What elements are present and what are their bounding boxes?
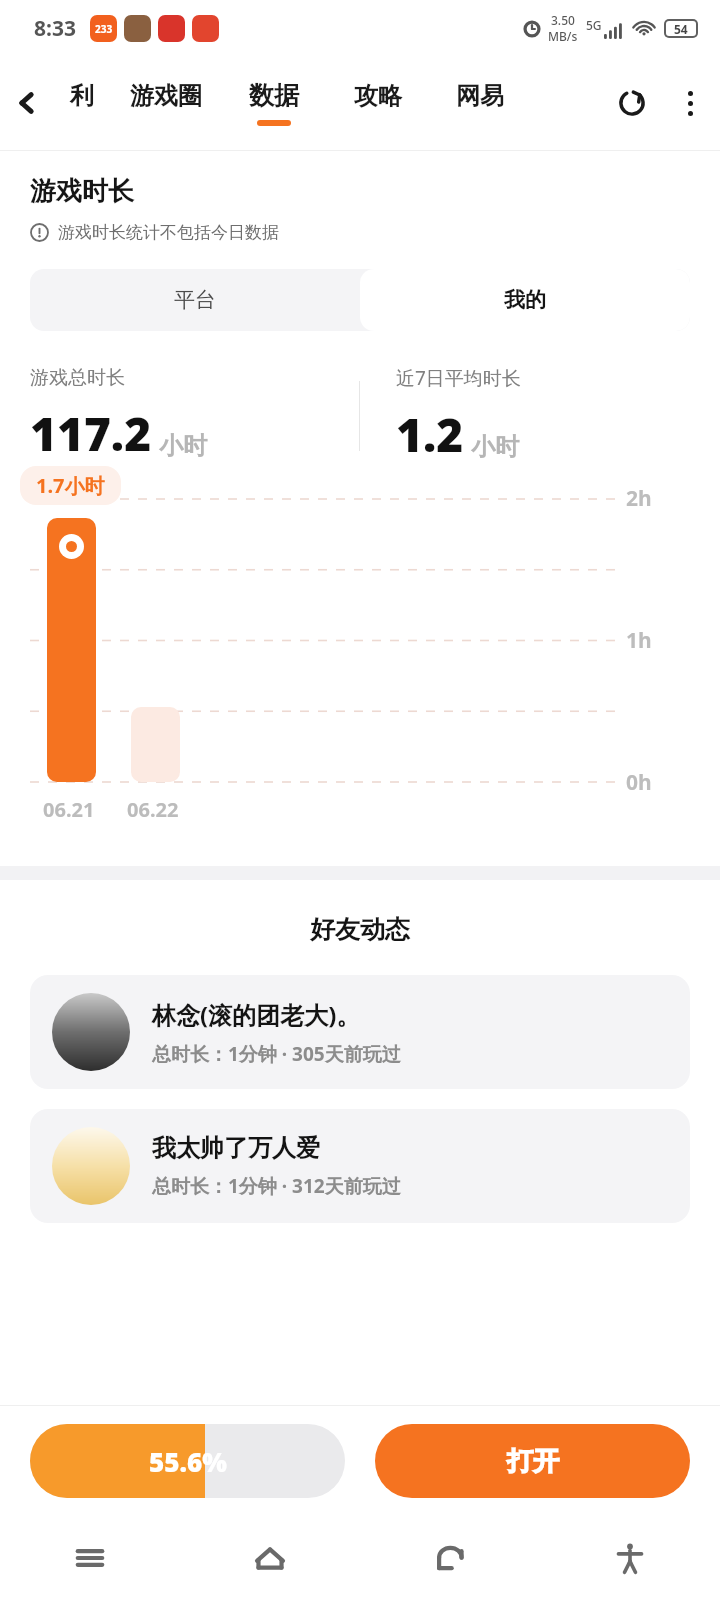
button[interactable]: 55.6%: [30, 1424, 345, 1498]
staticText: 数据: [249, 80, 299, 111]
staticText: 55.6%: [149, 1444, 227, 1479]
staticText: 好友动态: [310, 914, 410, 945]
staticText: 总时长：1分钟 · 305天前玩过: [152, 1041, 401, 1067]
button[interactable]: 平台: [30, 269, 360, 331]
staticText: 网易: [456, 81, 504, 111]
staticText: MB/s: [548, 28, 578, 44]
staticText: 117.2: [30, 402, 152, 465]
staticText: 游戏时长: [30, 175, 134, 208]
staticText: 06.22: [127, 796, 179, 823]
staticText: 我的: [504, 287, 546, 313]
button[interactable]: 数据: [222, 56, 326, 150]
button[interactable]: Accessibility: [540, 1516, 720, 1600]
staticText: 总时长：1分钟 · 312天前玩过: [152, 1173, 401, 1199]
staticText: 游戏圈: [130, 81, 202, 111]
button[interactable]: Home: [180, 1516, 360, 1600]
staticText: 近7日平均时长: [396, 365, 521, 391]
button[interactable]: Refresh: [604, 56, 660, 150]
button[interactable]: 利: [54, 56, 110, 150]
staticText: 我太帅了万人爱: [152, 1133, 320, 1163]
staticText: 1.2: [396, 403, 464, 466]
staticText: 打开: [507, 1445, 559, 1478]
button[interactable]: More options: [660, 56, 720, 150]
staticText: 小时: [159, 431, 207, 461]
staticText: 8:33: [34, 14, 76, 43]
button[interactable]: 林念(滚的团老大)。: [30, 975, 690, 1089]
staticText: 233: [95, 22, 113, 36]
button[interactable]: 打开: [375, 1424, 690, 1498]
staticText: 1h: [626, 626, 652, 655]
staticText: 06.21: [43, 796, 95, 823]
button[interactable]: 我太帅了万人爱: [30, 1109, 690, 1223]
button[interactable]: 网易: [430, 56, 530, 150]
button[interactable]: Recent apps: [0, 1516, 180, 1600]
button[interactable]: 游戏圈: [110, 56, 222, 150]
staticText: 小时: [471, 432, 519, 462]
staticText: 3.50: [551, 12, 575, 28]
staticText: 2h: [626, 484, 652, 513]
staticText: 游戏时长统计不包括今日数据: [58, 222, 279, 243]
staticText: 攻略: [354, 81, 402, 111]
staticText: 林念(滚的团老大)。: [152, 998, 361, 1031]
staticText: 利: [70, 81, 94, 111]
staticText: 游戏总时长: [30, 366, 125, 390]
button[interactable]: Back: [360, 1516, 540, 1600]
button[interactable]: [47, 518, 96, 782]
staticText: 54: [674, 21, 688, 36]
staticText: 0h: [626, 768, 652, 797]
button[interactable]: 攻略: [326, 56, 430, 150]
staticText: 1.7小时: [36, 472, 105, 499]
button[interactable]: Back: [0, 56, 54, 150]
staticText: 平台: [174, 287, 216, 313]
staticText: 5G: [586, 17, 602, 33]
button[interactable]: 我的: [360, 269, 690, 331]
button[interactable]: [131, 707, 180, 782]
